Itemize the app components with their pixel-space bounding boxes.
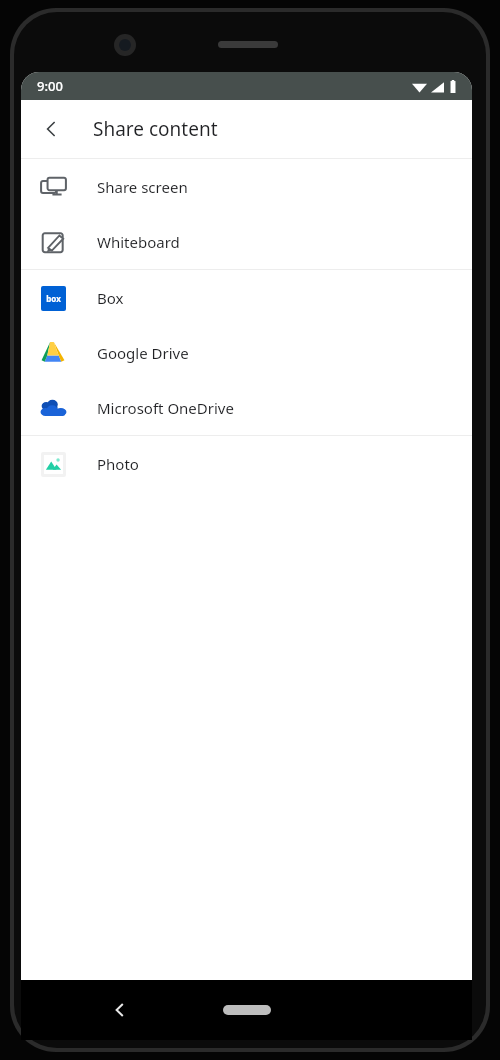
staticText: box	[46, 293, 61, 304]
staticText: Photo	[97, 454, 139, 474]
button[interactable]: Home	[223, 1005, 271, 1015]
button[interactable]: Back	[29, 106, 75, 152]
button[interactable]: Share screen	[21, 159, 472, 214]
staticText: Share content	[93, 116, 218, 142]
button[interactable]: Google Drive	[21, 325, 472, 380]
button[interactable]: box	[21, 270, 472, 325]
staticText: Box	[97, 288, 124, 308]
button[interactable]: Photo	[21, 436, 472, 491]
button[interactable]: Back	[98, 988, 142, 1032]
staticText: Whiteboard	[97, 232, 180, 252]
staticText: Microsoft OneDrive	[97, 398, 234, 418]
staticText: Share screen	[97, 177, 188, 197]
button[interactable]: Whiteboard	[21, 214, 472, 269]
staticText: 9:00	[37, 77, 63, 95]
staticText: Google Drive	[97, 343, 189, 363]
button[interactable]: Microsoft OneDrive	[21, 380, 472, 435]
